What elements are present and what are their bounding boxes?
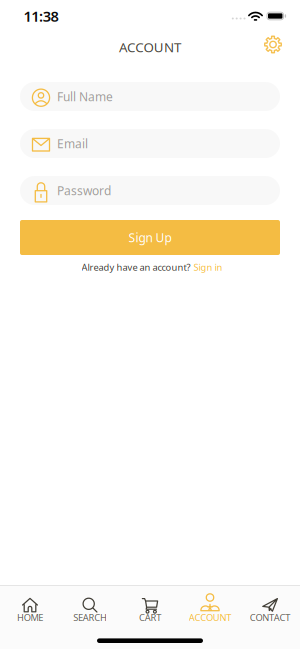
button[interactable]: CART <box>120 594 180 630</box>
button[interactable]: ACCOUNT <box>180 594 240 630</box>
staticText: HOME <box>17 611 43 623</box>
button[interactable]: HOME <box>0 594 60 630</box>
staticText: Password <box>57 182 111 198</box>
button[interactable]: Settings <box>259 33 287 61</box>
button[interactable]: Email <box>20 129 280 158</box>
button[interactable]: CONTACT <box>240 594 300 630</box>
staticText: 11:38 <box>23 6 59 26</box>
button[interactable]: SEARCH <box>60 594 120 630</box>
staticText: Already have an account? <box>81 261 190 273</box>
staticText: ACCOUNT <box>189 611 231 623</box>
button[interactable]: Sign in <box>79 261 220 273</box>
staticText: Sign in <box>193 261 222 273</box>
button[interactable]: Password <box>20 176 280 205</box>
button[interactable]: Sign Up <box>20 220 280 255</box>
staticText: Full Name <box>57 88 113 104</box>
staticText: ACCOUNT <box>119 38 181 56</box>
staticText: Sign Up <box>128 229 171 245</box>
staticText: Email <box>57 135 88 151</box>
staticText: CONTACT <box>250 611 290 623</box>
button[interactable]: Full Name <box>20 82 280 111</box>
staticText: CART <box>139 611 161 623</box>
staticText: SEARCH <box>73 611 107 623</box>
